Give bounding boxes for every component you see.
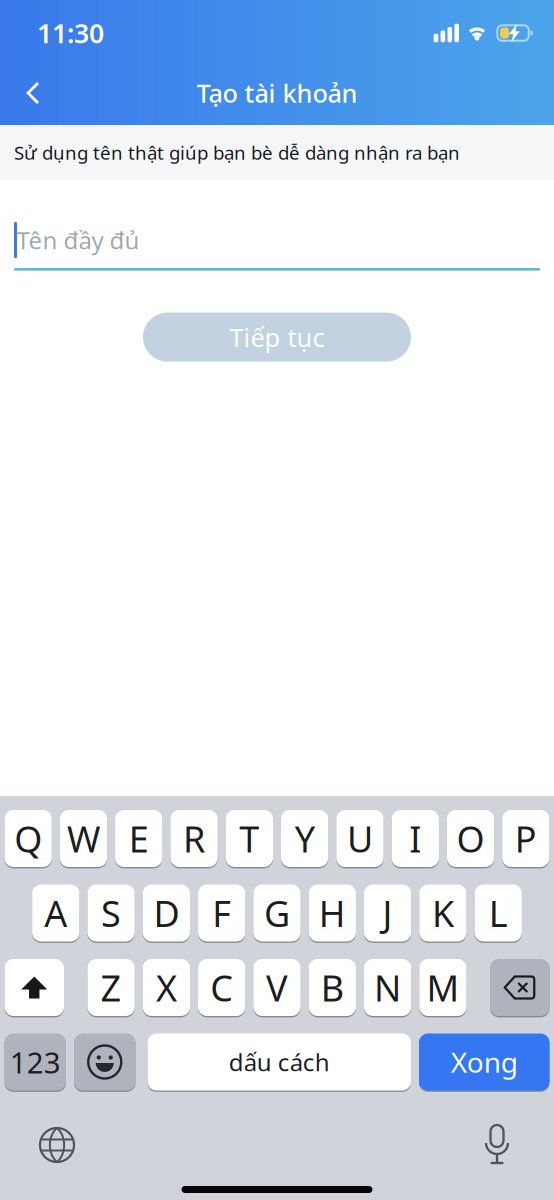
button[interactable]: J <box>364 883 411 942</box>
staticText: E <box>129 815 149 862</box>
staticText: F <box>212 889 231 937</box>
button[interactable]: F <box>198 883 245 942</box>
staticText: U <box>347 815 373 862</box>
staticText: K <box>432 889 454 937</box>
button[interactable]: N <box>364 958 411 1017</box>
button[interactable]: D <box>143 883 190 942</box>
button[interactable]: I <box>392 809 439 868</box>
button[interactable]: L <box>475 883 522 942</box>
staticText: Tên đầy đủ <box>16 224 139 256</box>
button[interactable]: Shift <box>4 958 64 1017</box>
button[interactable]: T <box>226 809 273 868</box>
button[interactable]: G <box>253 883 301 942</box>
staticText: Q <box>14 815 42 862</box>
staticText: W <box>67 815 100 862</box>
button[interactable]: E <box>115 809 162 868</box>
button[interactable]: Back <box>0 71 48 115</box>
staticText: L <box>489 889 508 937</box>
staticText: G <box>264 889 290 937</box>
button[interactable]: A <box>32 883 79 942</box>
staticText: Z <box>101 964 122 1011</box>
button[interactable]: dấu cách <box>147 1032 411 1091</box>
staticText: M <box>426 964 459 1011</box>
staticText: Tiếp tục <box>229 320 324 354</box>
button[interactable]: Z <box>87 958 135 1017</box>
staticText: S <box>101 889 121 937</box>
button[interactable]: Delete <box>490 958 549 1017</box>
button[interactable]: M <box>419 958 466 1017</box>
button[interactable]: Tiếp tục <box>143 313 411 362</box>
staticText: D <box>153 889 179 937</box>
button[interactable]: Next keyboard <box>35 1123 79 1167</box>
staticText: Sử dụng tên thật giúp bạn bè dễ dàng nhậ… <box>14 140 460 165</box>
staticText: A <box>44 889 67 937</box>
staticText: Xong <box>451 1043 518 1081</box>
button[interactable]: C <box>198 958 245 1017</box>
staticText: Tạo tài khoản <box>196 76 357 110</box>
button[interactable]: U <box>336 809 384 868</box>
button[interactable]: W <box>60 809 107 868</box>
button[interactable]: R <box>170 809 218 868</box>
button[interactable]: S <box>87 883 135 942</box>
button[interactable]: V <box>253 958 301 1017</box>
button[interactable]: O <box>447 809 494 868</box>
staticText: P <box>515 815 537 862</box>
button[interactable]: H <box>309 883 356 942</box>
staticText: C <box>210 964 233 1011</box>
button[interactable]: K <box>419 883 466 942</box>
staticText: J <box>383 889 393 937</box>
button[interactable]: Xong <box>419 1032 549 1091</box>
staticText: B <box>321 964 344 1011</box>
button[interactable]: Dictation <box>475 1123 519 1167</box>
staticText: N <box>374 964 401 1011</box>
staticText: 123 <box>10 1042 61 1081</box>
staticText: Y <box>295 815 315 862</box>
staticText: V <box>266 964 288 1011</box>
button[interactable]: Y <box>281 809 328 868</box>
staticText: T <box>239 815 259 862</box>
staticText: X <box>156 964 177 1011</box>
button[interactable]: Emoji <box>74 1032 135 1091</box>
button[interactable]: B <box>309 958 356 1017</box>
staticText: I <box>409 815 421 862</box>
button[interactable]: P <box>502 809 549 868</box>
button[interactable]: Q <box>4 809 52 868</box>
staticText: 11:30 <box>37 15 104 51</box>
staticText: R <box>183 815 205 862</box>
button[interactable]: X <box>143 958 190 1017</box>
staticText: O <box>457 815 485 862</box>
staticText: dấu cách <box>229 1046 330 1078</box>
staticText: H <box>319 889 346 937</box>
button[interactable]: 123 <box>4 1032 66 1091</box>
